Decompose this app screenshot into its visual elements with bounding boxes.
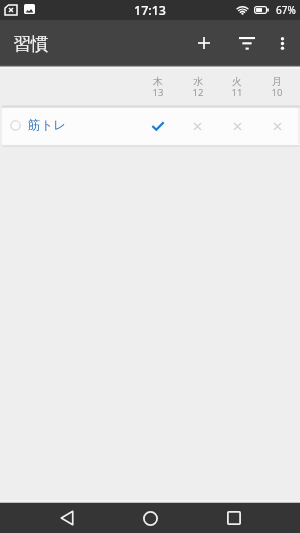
staticText: 11 xyxy=(223,86,251,99)
staticText: 筋トレ xyxy=(28,117,67,133)
staticText: 月 xyxy=(263,75,291,88)
staticText: 木 xyxy=(144,75,172,88)
button[interactable]: 筋トレ xyxy=(2,105,300,147)
staticText: 67% xyxy=(276,3,296,17)
staticText: 習慣 xyxy=(13,33,49,55)
button[interactable]: Home xyxy=(123,503,177,533)
staticText: 火 xyxy=(223,75,251,88)
button[interactable]: Add habit xyxy=(183,22,225,64)
staticText: 17:13 xyxy=(134,2,167,19)
button[interactable]: 筋トレ, 水 12: not done xyxy=(177,105,217,146)
staticText: 13 xyxy=(144,86,172,99)
staticText: 12 xyxy=(184,86,212,99)
button[interactable]: Back xyxy=(40,503,94,533)
button[interactable]: 筋トレ, 月 10: not done xyxy=(257,105,297,146)
button[interactable]: 筋トレ, 火 11: not done xyxy=(217,105,257,146)
staticText: 10 xyxy=(263,86,291,99)
button[interactable]: More options xyxy=(263,24,300,62)
button[interactable]: Filter xyxy=(226,22,268,64)
staticText: 水 xyxy=(184,75,212,88)
button[interactable]: Recent apps xyxy=(207,503,261,533)
button[interactable]: 筋トレ, 木 13: done xyxy=(137,105,177,146)
